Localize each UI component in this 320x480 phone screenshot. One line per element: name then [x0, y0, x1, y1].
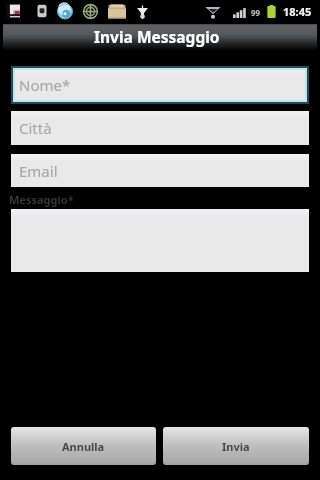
other: Notification [136, 4, 149, 19]
button[interactable]: Email [11, 154, 309, 187]
staticText: Messaggio* [9, 192, 74, 207]
other: Screenshot [6, 4, 20, 18]
button[interactable]: Annulla [11, 427, 156, 465]
other: USB connected [37, 4, 47, 18]
staticText: Email [19, 161, 58, 181]
staticText: Annulla [62, 439, 105, 454]
staticText: Invia [222, 439, 250, 454]
other: Battery [267, 5, 276, 18]
other: GPS [82, 4, 99, 19]
staticText: 18:45 [283, 4, 312, 19]
button[interactable]: Città [11, 111, 309, 145]
other: Signal strength [233, 6, 246, 18]
other: Wi-Fi [205, 5, 221, 19]
staticText: Città [19, 118, 52, 138]
button[interactable]: Invia [163, 427, 309, 465]
other: Browser [57, 4, 73, 19]
staticText: Invia Messaggio [94, 26, 220, 47]
button[interactable]: Nome* [13, 68, 307, 102]
other: Download [107, 4, 127, 20]
staticText: 99 [251, 7, 261, 18]
staticText: Nome* [19, 75, 71, 95]
